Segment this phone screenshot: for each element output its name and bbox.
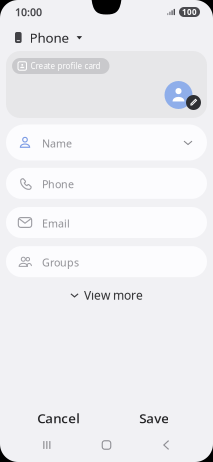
- staticText: 100: [182, 7, 197, 17]
- button[interactable]: Cancel: [11, 407, 106, 429]
- staticText: Email: [42, 216, 70, 230]
- button[interactable]: Phone: [0, 24, 82, 51]
- staticText: Groups: [42, 255, 79, 269]
- button[interactable]: Phone: [6, 168, 207, 199]
- staticText: Save: [139, 409, 169, 427]
- button[interactable]: Recents: [17, 434, 77, 456]
- button[interactable]: Email: [6, 207, 207, 238]
- staticText: Phone: [30, 29, 70, 46]
- button[interactable]: Back: [136, 434, 196, 456]
- staticText: Name: [42, 136, 72, 150]
- button[interactable]: Create profile card: [12, 58, 109, 74]
- staticText: Cancel: [37, 409, 80, 427]
- staticText: Phone: [42, 177, 74, 191]
- staticText: Create profile card: [30, 61, 100, 71]
- button[interactable]: Name: [6, 124, 207, 160]
- button[interactable]: Save: [106, 407, 202, 429]
- button[interactable]: Groups: [6, 246, 207, 277]
- staticText: 10:00: [15, 5, 42, 19]
- button[interactable]: View more: [0, 284, 213, 306]
- button[interactable]: Home: [77, 434, 136, 456]
- staticText: View more: [84, 287, 143, 303]
